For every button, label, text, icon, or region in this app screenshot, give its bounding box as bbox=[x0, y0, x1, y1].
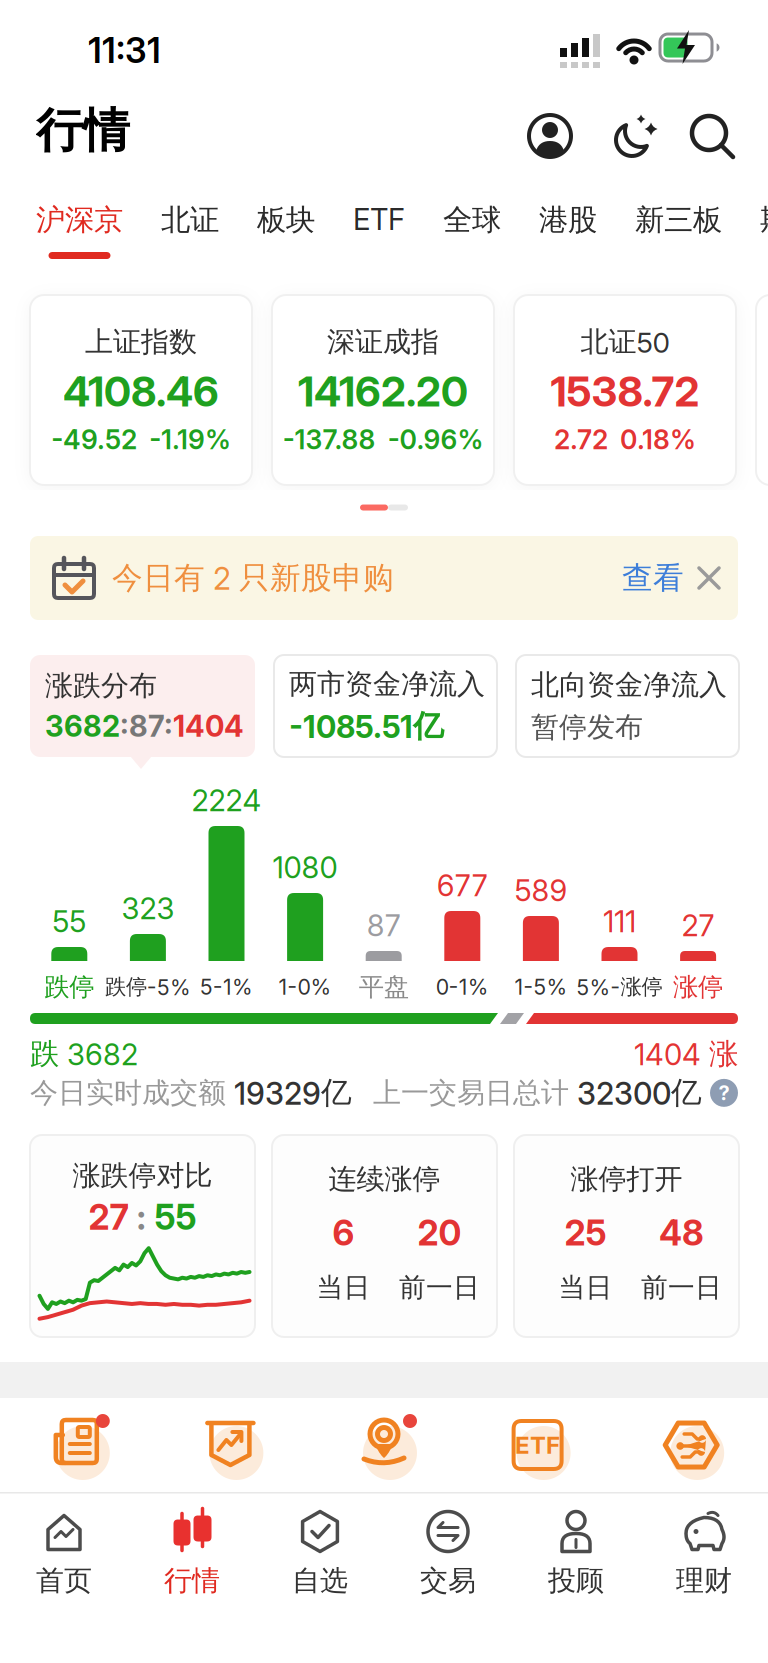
staticText: 25 bbox=[564, 1212, 606, 1253]
staticText: 27 bbox=[88, 1197, 128, 1238]
staticText: 首页 bbox=[36, 1563, 92, 1598]
button[interactable]: 涨停打开 bbox=[514, 1135, 739, 1337]
staticText: 48 bbox=[659, 1212, 704, 1253]
staticText: 平盘 bbox=[359, 971, 409, 1002]
button[interactable]: 发现 bbox=[307, 1398, 461, 1492]
staticText: -1085.51亿 bbox=[289, 707, 444, 745]
staticText: ? bbox=[718, 1081, 729, 1105]
staticText: 自选 bbox=[292, 1563, 348, 1598]
staticText: -137.88 -0.96% bbox=[282, 424, 483, 455]
staticText: 上证指数 bbox=[85, 325, 197, 359]
staticText: -49.52 -1.19% bbox=[51, 424, 231, 455]
staticText: 今日实时成交额 bbox=[30, 1076, 226, 1110]
button[interactable]: ETF bbox=[353, 202, 405, 237]
staticText: 4108.46 bbox=[63, 367, 219, 416]
staticText: 理财 bbox=[676, 1563, 732, 1598]
button[interactable]: 投顾 bbox=[512, 1507, 640, 1598]
button[interactable]: 期货 bbox=[760, 202, 768, 238]
button[interactable]: 深证成指 bbox=[272, 295, 494, 485]
staticText: 55 bbox=[154, 1197, 196, 1238]
staticText: 3682 bbox=[45, 709, 120, 743]
staticText: 1404 bbox=[173, 709, 244, 743]
staticText: 涨跌停对比 bbox=[72, 1158, 212, 1193]
staticText: 今日有 2 只新股申购 bbox=[112, 559, 394, 597]
button[interactable]: 连续涨停 bbox=[272, 1135, 497, 1337]
button[interactable]: 涨跌分布 bbox=[30, 655, 255, 770]
staticText: ETF bbox=[353, 202, 405, 237]
button[interactable]: Profile bbox=[527, 113, 573, 159]
staticText: 5%-涨停 bbox=[576, 974, 662, 1000]
button[interactable]: Dark mode bbox=[608, 113, 656, 159]
staticText: 当日 bbox=[558, 1271, 612, 1304]
staticText: 沪深京 bbox=[36, 202, 123, 238]
staticText: 行情 bbox=[164, 1563, 220, 1598]
staticText: 两市资金净流入 bbox=[289, 667, 485, 701]
button[interactable]: 北证50 bbox=[514, 295, 736, 485]
staticText: 行情 bbox=[36, 102, 130, 159]
staticText: 查看 bbox=[622, 559, 684, 597]
button[interactable]: 涨跌停对比 bbox=[30, 1135, 255, 1337]
button[interactable]: 新三板 bbox=[635, 202, 722, 238]
button[interactable]: 资讯 bbox=[0, 1398, 154, 1492]
staticText: 北证 bbox=[161, 202, 219, 238]
staticText: 19329亿 bbox=[234, 1074, 352, 1112]
button[interactable]: 两市资金净流入 bbox=[274, 655, 497, 757]
staticText: :87: bbox=[120, 709, 173, 743]
staticText: 2224 bbox=[191, 783, 261, 818]
staticText: 1-0% bbox=[279, 974, 332, 1000]
staticText: 6 bbox=[332, 1212, 354, 1253]
button[interactable]: 沪深京 bbox=[36, 202, 123, 259]
staticText: 前一日 bbox=[641, 1271, 722, 1304]
staticText: 涨停 bbox=[673, 971, 723, 1002]
staticText: 5-1% bbox=[200, 974, 253, 1000]
button[interactable]: ETF bbox=[461, 1398, 614, 1492]
button[interactable]: 理财 bbox=[640, 1507, 768, 1598]
button[interactable]: 全球 bbox=[443, 202, 501, 238]
button[interactable]: Search bbox=[690, 114, 735, 159]
button[interactable]: 自选 bbox=[256, 1507, 384, 1598]
staticText: 20 bbox=[417, 1212, 461, 1253]
staticText: 589 bbox=[514, 873, 567, 908]
staticText: 0-1% bbox=[436, 974, 489, 1000]
button[interactable]: 量化 bbox=[614, 1398, 768, 1492]
staticText: 新三板 bbox=[635, 202, 722, 238]
staticText: 1404 涨 bbox=[634, 1036, 738, 1072]
staticText: 当日 bbox=[316, 1271, 370, 1304]
staticText: 677 bbox=[437, 868, 488, 903]
staticText: 投顾 bbox=[548, 1563, 604, 1598]
staticText: 111 bbox=[603, 904, 636, 939]
button[interactable]: Dismiss bbox=[684, 558, 734, 598]
staticText: 连续涨停 bbox=[328, 1162, 440, 1196]
staticText: 北证50 bbox=[580, 325, 669, 359]
staticText: 1538.72 bbox=[550, 367, 699, 416]
staticText: 全球 bbox=[443, 202, 501, 238]
button[interactable]: 上证指数 bbox=[30, 295, 252, 485]
button[interactable]: 北证 bbox=[161, 202, 219, 238]
button[interactable]: Help bbox=[702, 1079, 738, 1107]
staticText: 32300亿 bbox=[577, 1074, 702, 1112]
staticText: ETF bbox=[515, 1431, 560, 1459]
button[interactable]: 行情 bbox=[128, 1507, 256, 1598]
staticText: 港股 bbox=[539, 202, 597, 238]
staticText: 板块 bbox=[257, 202, 315, 238]
staticText: 55 bbox=[52, 904, 86, 939]
staticText: 1080 bbox=[273, 850, 338, 885]
staticText: 前一日 bbox=[399, 1271, 480, 1304]
button[interactable]: 首页 bbox=[0, 1507, 128, 1598]
staticText: 北向资金净流入 bbox=[531, 668, 727, 702]
staticText: 跌停 bbox=[44, 971, 94, 1002]
button[interactable]: 查看 bbox=[622, 559, 684, 597]
staticText: 87 bbox=[367, 908, 401, 943]
button[interactable]: 北向资金净流入 bbox=[516, 655, 739, 757]
button[interactable]: 板块 bbox=[257, 202, 315, 238]
button[interactable]: 港股 bbox=[539, 202, 597, 238]
staticText: 14162.20 bbox=[298, 367, 468, 416]
staticText: 暂停发布 bbox=[531, 710, 643, 744]
button[interactable]: 交易 bbox=[384, 1507, 512, 1598]
button[interactable]: 热点 bbox=[154, 1398, 307, 1492]
staticText: 交易 bbox=[420, 1563, 476, 1598]
staticText: 期货 bbox=[760, 202, 768, 238]
staticText: 深证成指 bbox=[327, 325, 439, 359]
staticText: 跌停-5% bbox=[105, 974, 191, 1000]
staticText: 跌 3682 bbox=[30, 1036, 138, 1072]
